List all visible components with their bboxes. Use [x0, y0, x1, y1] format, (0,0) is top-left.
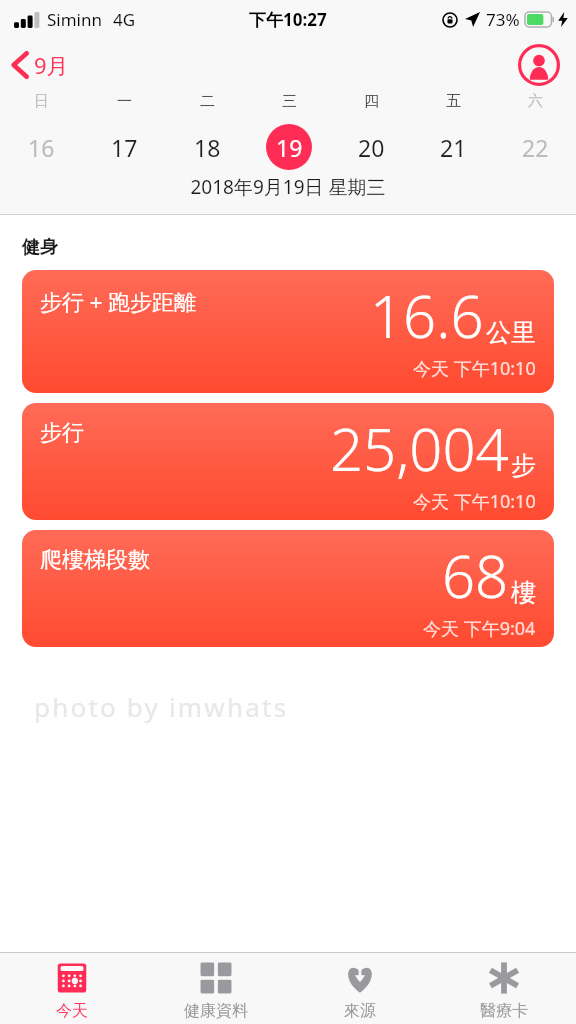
button[interactable]: 今天: [0, 953, 144, 1024]
button[interactable]: 18: [166, 123, 248, 171]
staticText: 68: [442, 536, 509, 615]
staticText: 25,004: [330, 409, 509, 488]
staticText: 五: [446, 92, 461, 111]
staticText: 步: [511, 450, 536, 481]
staticText: 16.6: [370, 276, 484, 355]
staticText: 今天: [56, 1001, 88, 1021]
staticText: 六: [528, 92, 543, 111]
button[interactable]: 19: [248, 123, 330, 171]
staticText: 步行 + 跑步距離: [40, 286, 197, 316]
staticText: 健康資料: [184, 1001, 248, 1021]
staticText: Siminn: [47, 8, 103, 31]
staticText: 三: [282, 92, 297, 111]
staticText: 今天 下午10:10: [413, 356, 536, 381]
button[interactable]: 17: [83, 123, 166, 171]
staticText: 今天 下午9:04: [423, 616, 536, 641]
staticText: 19: [276, 132, 303, 163]
button[interactable]: 22: [494, 123, 576, 171]
staticText: 9月: [34, 50, 69, 80]
staticText: 樓: [511, 577, 536, 608]
staticText: 17: [111, 132, 138, 163]
staticText: 來源: [344, 1001, 376, 1021]
button[interactable]: 來源: [288, 953, 432, 1024]
staticText: 16: [28, 132, 55, 163]
staticText: 一: [117, 92, 132, 111]
button[interactable]: 21: [412, 123, 494, 171]
staticText: 公里: [486, 317, 536, 348]
button[interactable]: 步行: [22, 403, 554, 520]
staticText: 2018年9月19日 星期三: [0, 174, 576, 200]
staticText: 下午10:27: [249, 8, 327, 31]
button[interactable]: 爬樓梯段數: [22, 530, 554, 647]
button[interactable]: Profile: [518, 44, 560, 86]
staticText: 日: [34, 92, 49, 111]
staticText: 73%: [486, 8, 520, 31]
button[interactable]: 健康資料: [144, 953, 288, 1024]
button[interactable]: 醫療卡: [432, 953, 576, 1024]
staticText: 四: [364, 92, 379, 111]
staticText: 步行: [40, 419, 84, 447]
button[interactable]: 16: [0, 123, 83, 171]
button[interactable]: 步行 + 跑步距離: [22, 270, 554, 393]
staticText: 20: [358, 132, 385, 163]
staticText: 21: [440, 132, 467, 163]
staticText: 18: [194, 132, 221, 163]
staticText: photo by imwhats: [34, 689, 289, 724]
staticText: 22: [522, 132, 549, 163]
staticText: 今天 下午10:10: [413, 489, 536, 514]
staticText: 二: [200, 92, 215, 111]
staticText: 爬樓梯段數: [40, 546, 150, 574]
button[interactable]: 9月: [0, 44, 81, 86]
staticText: 4G: [113, 8, 136, 31]
staticText: 醫療卡: [480, 1001, 528, 1021]
staticText: 健身: [22, 236, 58, 259]
button[interactable]: 20: [330, 123, 412, 171]
